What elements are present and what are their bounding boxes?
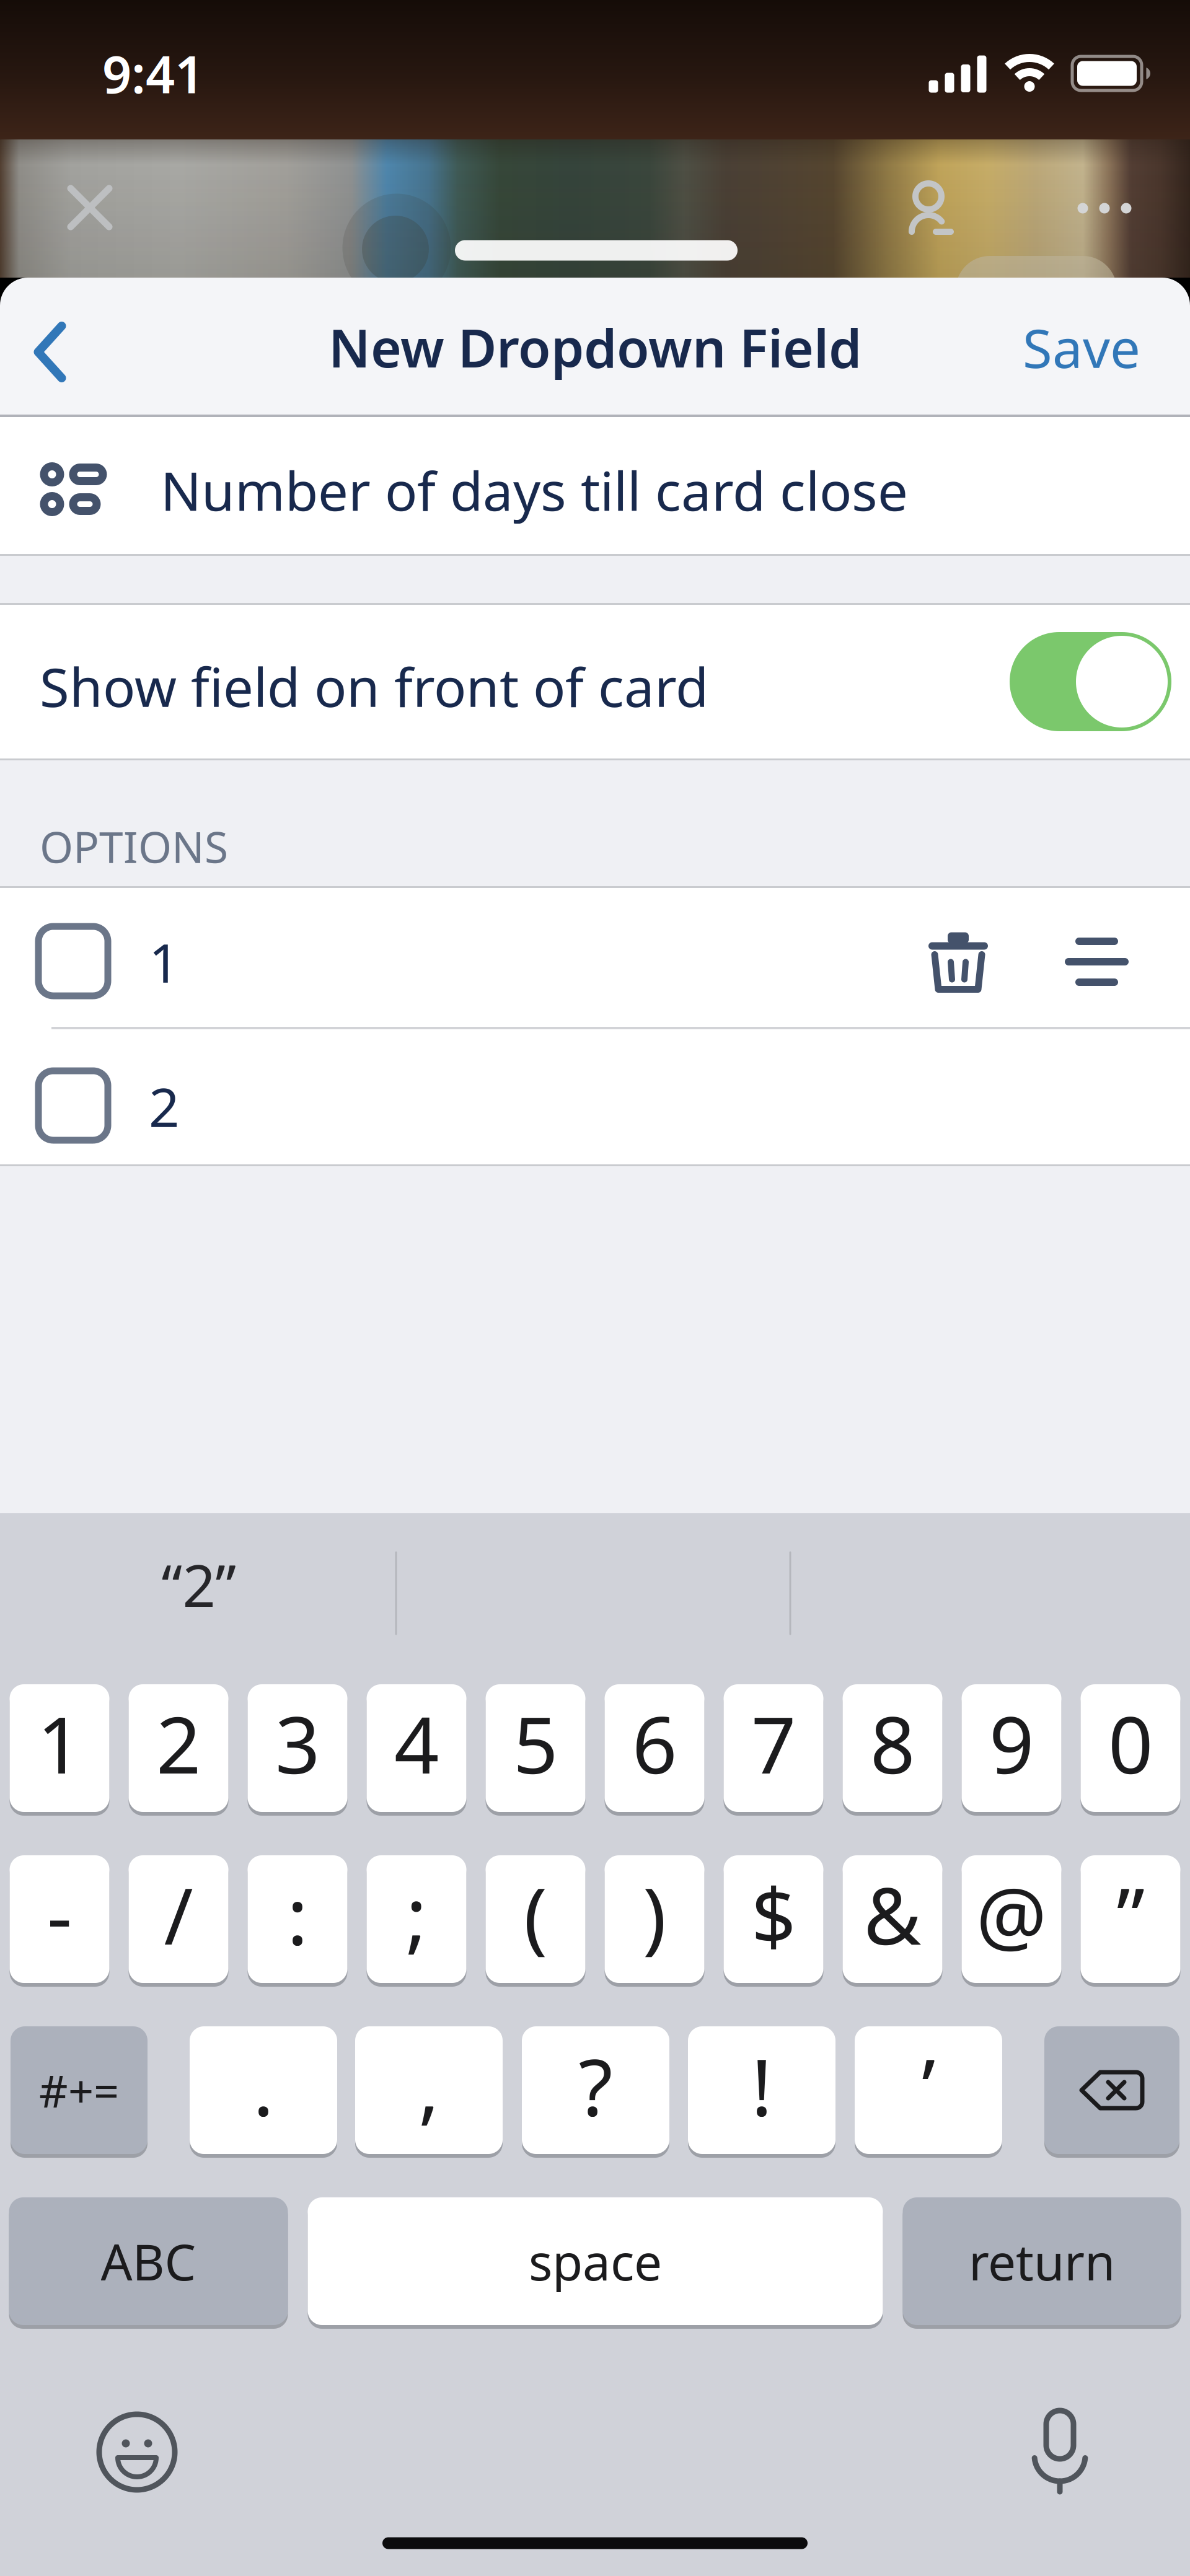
- button[interactable]: 2: [129, 1682, 228, 1814]
- staticText: /: [164, 1862, 193, 1966]
- staticText: 6: [632, 1691, 677, 1795]
- staticText: Save: [1023, 311, 1140, 383]
- button[interactable]: ?: [522, 2024, 669, 2156]
- staticText: OPTIONS: [40, 818, 228, 875]
- button[interactable]: ’: [855, 2024, 1002, 2156]
- button[interactable]: [1044, 2024, 1179, 2156]
- staticText: 5: [513, 1691, 558, 1795]
- staticText: #+=: [39, 2061, 119, 2120]
- staticText: $: [751, 1862, 796, 1966]
- button[interactable]: ;: [367, 1853, 466, 1985]
- button[interactable]: $: [724, 1853, 823, 1985]
- staticText: 2: [156, 1691, 201, 1795]
- button[interactable]: ”: [1081, 1853, 1180, 1985]
- button[interactable]: [1078, 203, 1131, 213]
- button[interactable]: [1010, 632, 1171, 731]
- staticText: ’: [922, 2033, 935, 2137]
- staticText: 9: [989, 1691, 1034, 1795]
- staticText: ”: [1117, 1862, 1144, 1966]
- staticText: ,: [418, 2033, 439, 2137]
- button[interactable]: 6: [605, 1682, 704, 1814]
- button[interactable]: &: [843, 1853, 942, 1985]
- staticText: 3: [275, 1691, 320, 1795]
- button[interactable]: [988, 933, 1190, 982]
- staticText: ?: [579, 2033, 613, 2137]
- button[interactable]: ABC: [9, 2196, 288, 2327]
- button[interactable]: Number of days till card close: [0, 417, 1190, 554]
- button[interactable]: return: [903, 2196, 1181, 2327]
- button[interactable]: (: [486, 1853, 585, 1985]
- staticText: !: [751, 2033, 772, 2137]
- button[interactable]: 5: [486, 1682, 585, 1814]
- button[interactable]: 7: [724, 1682, 823, 1814]
- button[interactable]: /: [129, 1853, 228, 1985]
- staticText: :: [287, 1862, 308, 1966]
- staticText: 9:41: [102, 39, 204, 107]
- staticText: 2: [149, 1070, 180, 1142]
- button[interactable]: 4: [367, 1682, 466, 1814]
- button[interactable]: 9: [962, 1682, 1061, 1814]
- staticText: .: [253, 2033, 274, 2137]
- button[interactable]: [99, 2414, 175, 2490]
- staticText: (: [524, 1862, 547, 1966]
- button[interactable]: 0: [1081, 1682, 1180, 1814]
- staticText: 0: [1108, 1691, 1153, 1795]
- button[interactable]: #+=: [11, 2024, 148, 2156]
- button[interactable]: 8: [843, 1682, 942, 1814]
- staticText: New Dropdown Field: [328, 312, 862, 382]
- staticText: return: [969, 2228, 1115, 2294]
- button[interactable]: 1: [10, 1682, 109, 1814]
- button[interactable]: [0, 326, 84, 378]
- button[interactable]: 2: [0, 1029, 1190, 1164]
- staticText: 8: [870, 1691, 915, 1795]
- staticText: 1: [149, 926, 180, 997]
- button[interactable]: [928, 927, 988, 987]
- button[interactable]: Save: [1023, 311, 1140, 383]
- button[interactable]: 3: [248, 1682, 347, 1814]
- staticText: @: [976, 1862, 1047, 1966]
- staticText: space: [529, 2228, 662, 2294]
- staticText: 4: [394, 1691, 439, 1795]
- button[interactable]: -: [10, 1853, 109, 1985]
- button[interactable]: 1: [0, 888, 1190, 1027]
- staticText: Number of days till card close: [161, 454, 908, 526]
- staticText: 1: [37, 1691, 82, 1795]
- button[interactable]: ,: [355, 2024, 503, 2156]
- staticText: ;: [406, 1862, 427, 1966]
- staticText: Show field on front of card: [40, 650, 708, 722]
- button[interactable]: [71, 188, 109, 227]
- staticText: “2”: [161, 1546, 236, 1623]
- button[interactable]: “2”: [161, 1546, 236, 1623]
- button[interactable]: space: [308, 2196, 883, 2327]
- staticText: ABC: [101, 2228, 196, 2294]
- button[interactable]: .: [190, 2024, 337, 2156]
- staticText: 7: [751, 1691, 796, 1795]
- staticText: ): [643, 1862, 666, 1966]
- staticText: &: [864, 1862, 921, 1966]
- button[interactable]: [1028, 2410, 1091, 2494]
- button[interactable]: @: [962, 1853, 1061, 1985]
- button[interactable]: !: [688, 2024, 835, 2156]
- button[interactable]: [904, 183, 953, 235]
- button[interactable]: ): [605, 1853, 704, 1985]
- staticText: -: [47, 1862, 72, 1966]
- button[interactable]: :: [248, 1853, 347, 1985]
